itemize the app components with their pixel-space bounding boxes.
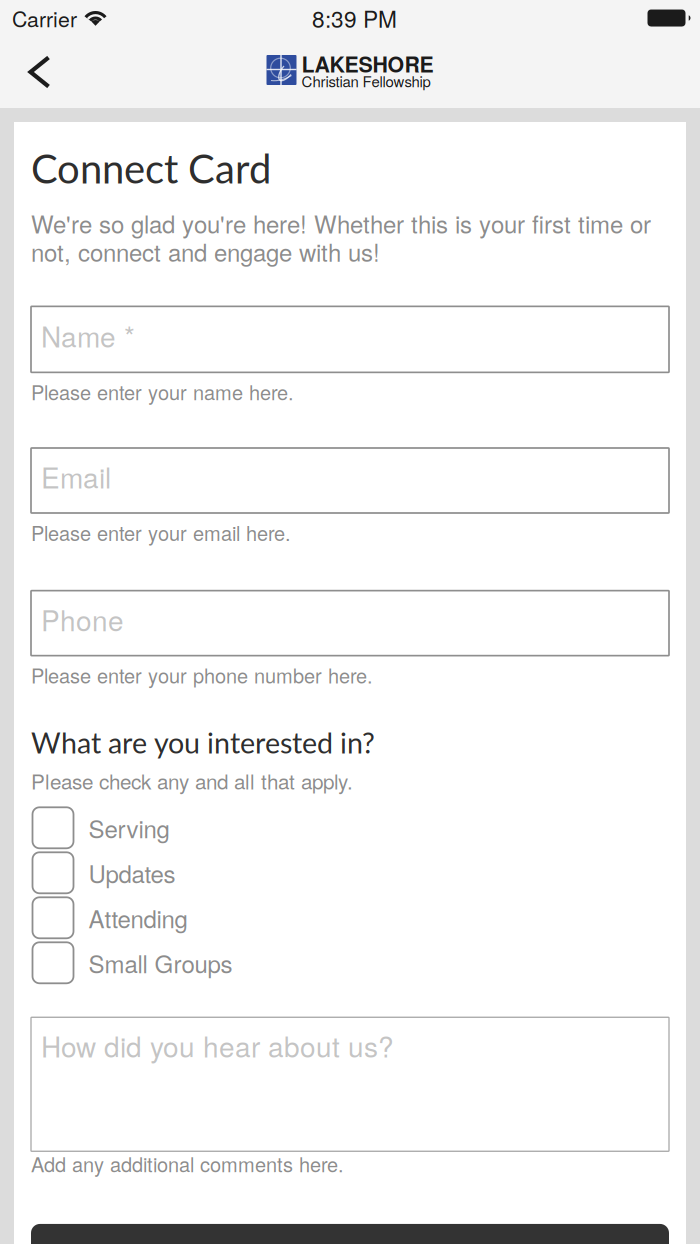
staticText: Connect Card <box>31 144 271 192</box>
button[interactable]: Attending <box>31 895 669 940</box>
staticText: Please enter your email here. <box>31 518 291 547</box>
staticText: Name * <box>41 315 135 355</box>
staticText: Email <box>41 456 111 497</box>
staticText: Updates <box>88 856 175 890</box>
staticText: Christian Fellowship <box>301 70 430 91</box>
staticText: We're so glad you're here! Whether this … <box>31 209 651 265</box>
button[interactable]: Updates <box>31 850 669 895</box>
staticText: Serving <box>88 811 169 845</box>
staticText: Phone <box>41 599 124 639</box>
staticText: Please check any and all that apply. <box>31 766 353 795</box>
staticText: LAKESHORE <box>301 48 433 79</box>
button[interactable]: Small Groups <box>31 940 669 985</box>
staticText: Please enter your name here. <box>31 377 294 406</box>
button[interactable]: Submit <box>31 1224 669 1244</box>
button[interactable]: How did you hear about us? <box>31 1017 669 1151</box>
staticText: Please enter your phone number here. <box>31 661 373 689</box>
staticText: Carrier <box>12 3 77 33</box>
button[interactable]: Back <box>0 37 73 106</box>
button[interactable]: Phone <box>31 591 669 656</box>
staticText: Small Groups <box>88 946 232 980</box>
staticText: 8:39 PM <box>312 2 397 34</box>
button[interactable]: Name * <box>31 306 669 372</box>
button[interactable]: Email <box>31 448 669 513</box>
staticText: What are you interested in? <box>31 725 375 760</box>
staticText: Attending <box>88 901 187 935</box>
staticText: Add any additional comments here. <box>31 1149 344 1178</box>
button[interactable]: Serving <box>31 805 669 850</box>
staticText: How did you hear about us? <box>41 1025 394 1065</box>
